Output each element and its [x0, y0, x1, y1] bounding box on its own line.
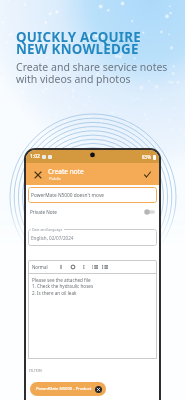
button[interactable]: Bold	[70, 264, 76, 270]
button[interactable]: English, 02/07/2024	[28, 229, 157, 246]
other: Private note toggle	[144, 209, 155, 215]
button[interactable]: Please see the attached file 1. Check th…	[28, 273, 157, 359]
staticText: FILTERS	[29, 369, 43, 373]
staticText: Create and share service notes with vide…	[16, 60, 168, 86]
button[interactable]: Save	[141, 168, 154, 181]
button[interactable]: Numbered list	[102, 264, 108, 270]
staticText: 1:02	[30, 153, 40, 160]
staticText: Please see the attached file 1. Check th…	[32, 277, 94, 296]
staticText: 83%	[142, 154, 151, 160]
staticText: Public	[49, 176, 61, 182]
button[interactable]: PowerMate N5000 doesn't move	[28, 187, 157, 203]
button[interactable]: Private Note	[30, 206, 155, 217]
staticText: Date and language	[32, 227, 63, 232]
staticText: I	[83, 264, 85, 270]
button[interactable]: Close	[31, 168, 44, 181]
button[interactable]: Italic	[81, 264, 87, 270]
button[interactable]: Normal	[32, 264, 48, 270]
staticText: Normal	[32, 264, 48, 270]
staticText: PowerMate N5000 - Product	[36, 386, 92, 392]
button[interactable]: Text size	[58, 264, 64, 270]
staticText: Create note	[48, 167, 84, 176]
staticText: PowerMate N5000 doesn't move	[31, 192, 105, 199]
staticText: QUICKLY ACQUIRE NEW KNOWLEDGE	[16, 28, 141, 58]
staticText: English, 02/07/2024	[31, 235, 74, 241]
staticText: Private Note	[30, 209, 57, 215]
button[interactable]: Bulleted list	[92, 264, 98, 270]
button[interactable]: PowerMate N5000 - Product	[30, 382, 106, 396]
